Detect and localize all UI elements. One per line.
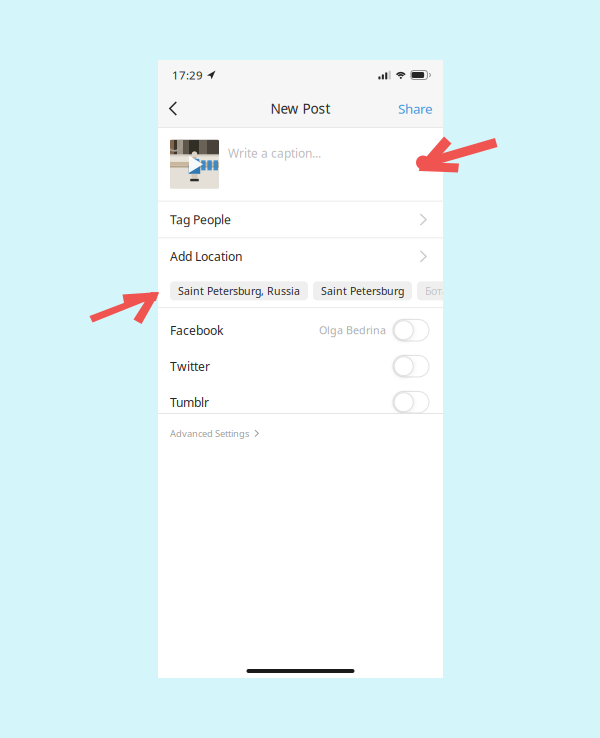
button[interactable]: Add Location bbox=[158, 238, 443, 274]
button[interactable]: Advanced Settings bbox=[158, 414, 443, 457]
staticText: New Post bbox=[270, 99, 330, 118]
button[interactable]: Twitter bbox=[158, 348, 443, 384]
button[interactable]: Share bbox=[392, 90, 439, 127]
staticText: Share bbox=[398, 99, 433, 118]
staticText: Saint Petersburg, Russia bbox=[178, 284, 300, 298]
staticText: 17:29 bbox=[172, 67, 203, 83]
staticText: Ботанический bbox=[425, 284, 498, 298]
staticText: Tag People bbox=[170, 211, 231, 228]
staticText: Twitter bbox=[170, 358, 210, 374]
button[interactable]: Tag People bbox=[158, 202, 443, 238]
staticText: Olga Bedrina bbox=[319, 323, 386, 337]
staticText: Write a caption... bbox=[228, 145, 321, 161]
button[interactable]: Ботанический bbox=[417, 281, 506, 300]
staticText: Advanced Settings bbox=[170, 427, 249, 440]
button[interactable]: Write a caption... bbox=[158, 128, 443, 201]
staticText: Saint Petersburg bbox=[321, 284, 404, 298]
button[interactable]: Tumblr bbox=[158, 384, 443, 420]
staticText: Tumblr bbox=[170, 394, 209, 410]
button[interactable]: Back bbox=[159, 90, 187, 127]
button[interactable]: Saint Petersburg, Russia bbox=[170, 281, 308, 300]
staticText: Add Location bbox=[170, 248, 242, 265]
button[interactable]: Facebook bbox=[158, 312, 443, 348]
staticText: Facebook bbox=[170, 322, 223, 338]
button[interactable]: Saint Petersburg bbox=[313, 281, 412, 300]
